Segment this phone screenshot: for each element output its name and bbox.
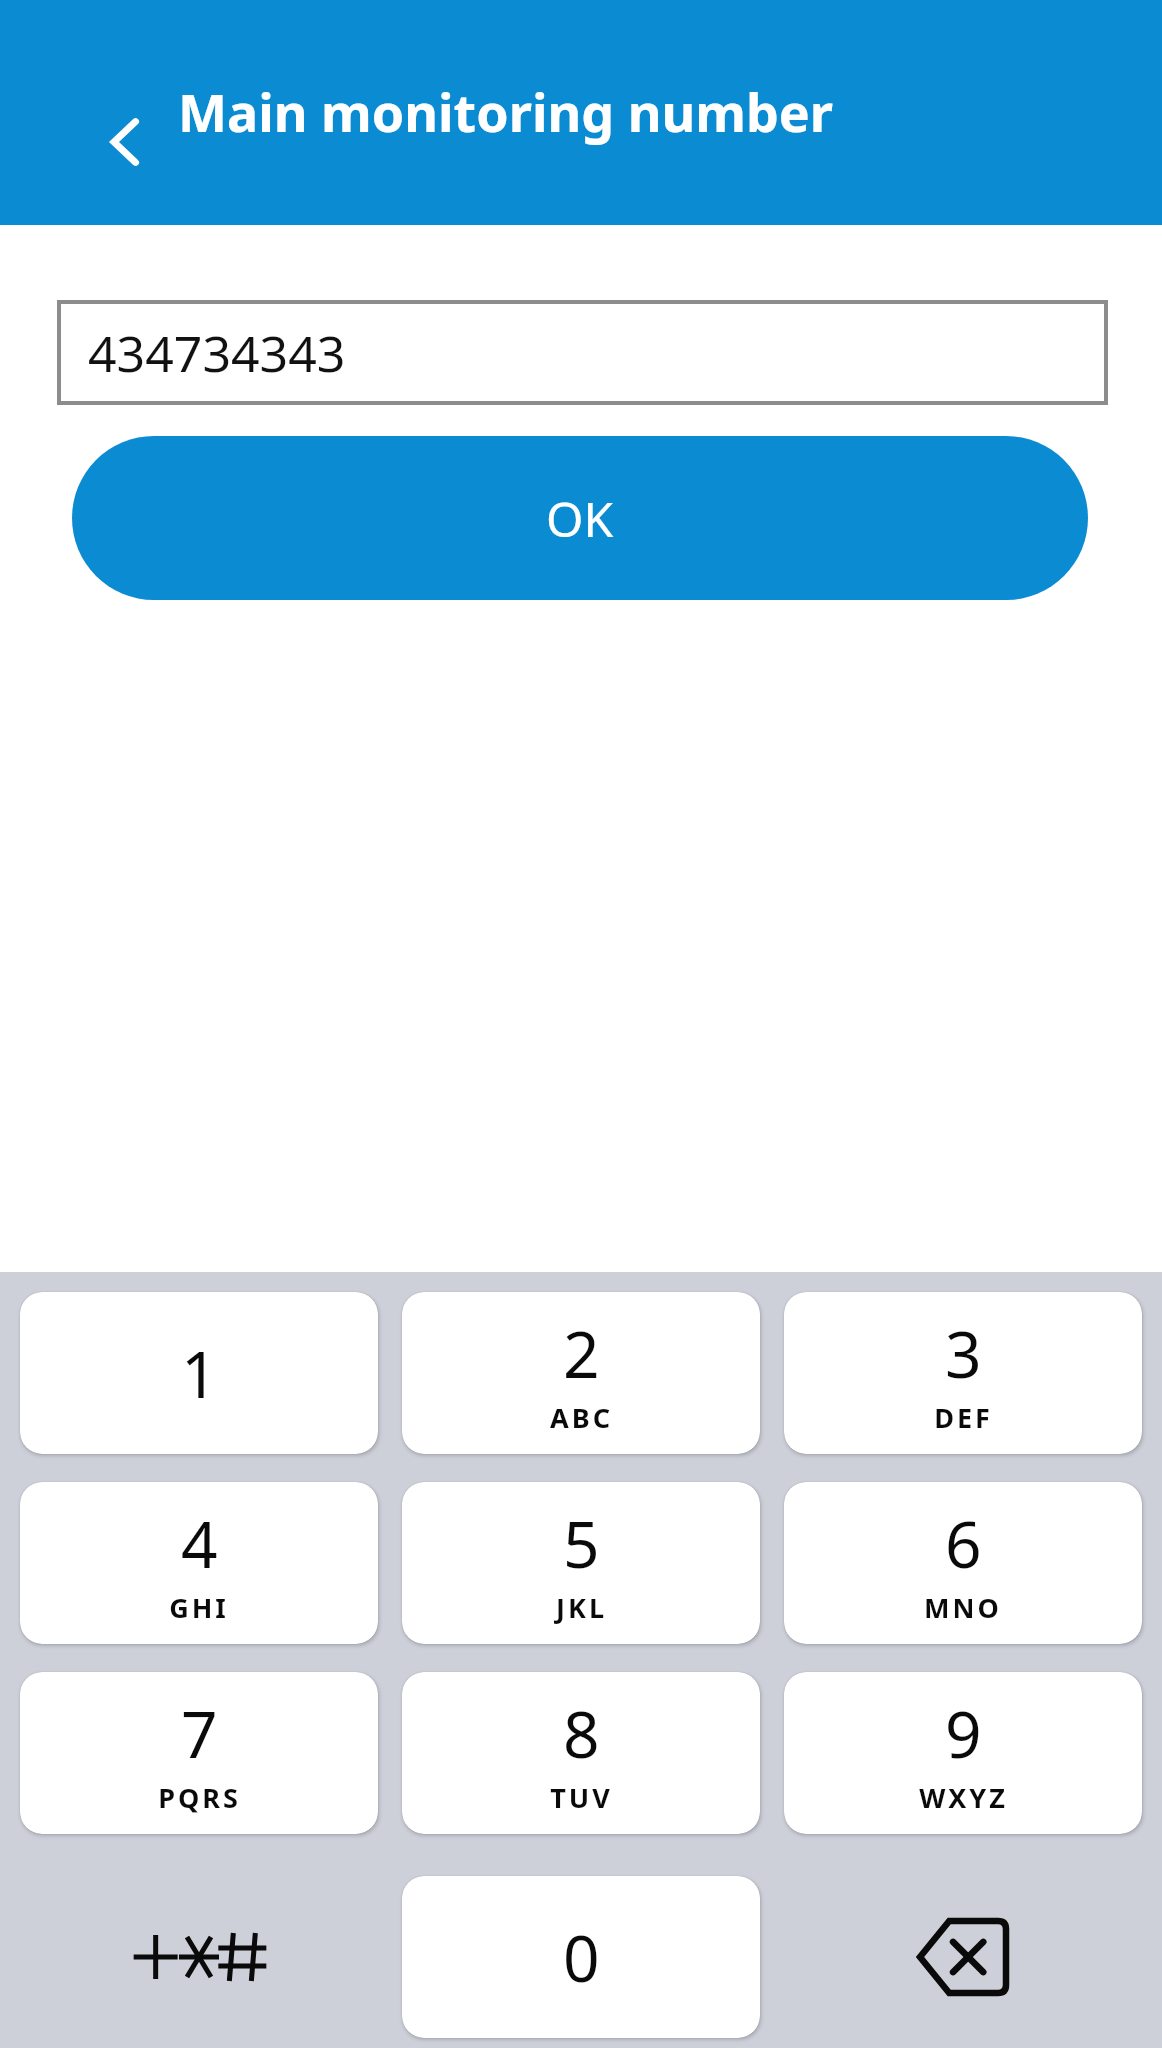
staticText: 9 <box>945 1690 982 1777</box>
button[interactable]: 9 <box>784 1672 1142 1834</box>
button[interactable]: OK <box>72 436 1088 600</box>
staticText: 2 <box>563 1310 600 1397</box>
button[interactable]: 6 <box>784 1482 1142 1644</box>
button[interactable]: 1 <box>20 1292 378 1454</box>
staticText: 1 <box>181 1330 218 1417</box>
staticText: MNO <box>924 1589 1002 1626</box>
staticText: 434734343 <box>88 319 346 387</box>
button[interactable]: 7 <box>20 1672 378 1834</box>
staticText: 0 <box>563 1914 600 2001</box>
button[interactable]: 3 <box>784 1292 1142 1454</box>
button[interactable]: Symbols plus star hash <box>20 1876 378 2038</box>
button[interactable]: Back <box>72 88 180 196</box>
button[interactable]: 8 <box>402 1672 760 1834</box>
staticText: TUV <box>550 1779 613 1816</box>
staticText: 7 <box>181 1690 218 1777</box>
staticText: OK <box>546 486 614 551</box>
staticText: JKL <box>556 1589 607 1626</box>
button[interactable]: 5 <box>402 1482 760 1644</box>
button[interactable]: 434734343 <box>57 300 1108 405</box>
staticText: 3 <box>945 1310 982 1397</box>
button[interactable]: Backspace <box>784 1876 1142 2038</box>
staticText: Main monitoring number <box>178 76 834 147</box>
staticText: PQRS <box>158 1779 241 1816</box>
staticText: 6 <box>945 1500 982 1587</box>
staticText: DEF <box>934 1399 993 1436</box>
staticText: ABC <box>550 1399 613 1436</box>
staticText: GHI <box>169 1589 229 1626</box>
button[interactable]: 2 <box>402 1292 760 1454</box>
button[interactable]: 0 <box>402 1876 760 2038</box>
staticText: 4 <box>181 1500 218 1587</box>
staticText: WXYZ <box>919 1779 1008 1816</box>
button[interactable]: 4 <box>20 1482 378 1644</box>
staticText: 8 <box>563 1690 600 1777</box>
staticText: 5 <box>563 1500 600 1587</box>
